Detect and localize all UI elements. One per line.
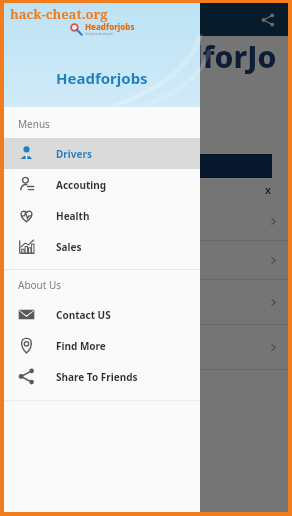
button[interactable]: Share — [256, 8, 280, 32]
staticText: hack-cheat.org — [10, 5, 108, 23]
button[interactable]: Contact US — [4, 299, 200, 330]
button[interactable]: Drivers — [4, 138, 200, 169]
button[interactable]: Warehouse Associate / Lease — [4, 241, 288, 279]
staticText: Share To Friends — [56, 370, 138, 384]
button[interactable]: Share To Friends — [4, 361, 200, 392]
button[interactable]: Close navigation drawer — [200, 3, 288, 512]
staticText: Warehouse Associate / Lease — [18, 206, 163, 220]
staticText: Warehouse Associate / Lease — [18, 245, 163, 259]
staticText: Health — [56, 209, 90, 223]
staticText: Sales — [56, 240, 82, 254]
button[interactable]: CDL-A Driver / $5K Sign-On — [4, 325, 288, 369]
button[interactable]: Health — [4, 200, 200, 231]
staticText: CDL-A Driver / $5K Sign-On — [18, 329, 150, 343]
staticText: HeadforJobs — [124, 36, 288, 74]
staticText: Contact US — [56, 308, 111, 322]
button[interactable]: Accouting — [4, 169, 200, 200]
staticText: Accouting — [56, 178, 107, 192]
button[interactable] — [20, 88, 272, 114]
button[interactable]: Warehouse Associate / Lease — [4, 202, 288, 240]
staticText: Menus — [18, 117, 50, 131]
staticText: Drivers — [56, 147, 92, 161]
staticText: Headforjobs — [56, 68, 148, 88]
button[interactable] — [20, 120, 272, 146]
button[interactable]: CDL-A Truck Driver / Up to 65% of — [4, 280, 288, 324]
staticText: Find More — [56, 339, 106, 353]
staticText: Headforjobs — [85, 21, 135, 32]
staticText: CDL-A Truck Driver / Up to 65% of — [18, 284, 184, 298]
staticText: X — [265, 184, 272, 196]
staticText: About Us — [18, 278, 62, 292]
button[interactable]: Sales — [4, 231, 200, 262]
button[interactable] — [20, 154, 272, 178]
staticText: find your dream job — [85, 32, 113, 36]
button[interactable]: Find More — [4, 330, 200, 361]
